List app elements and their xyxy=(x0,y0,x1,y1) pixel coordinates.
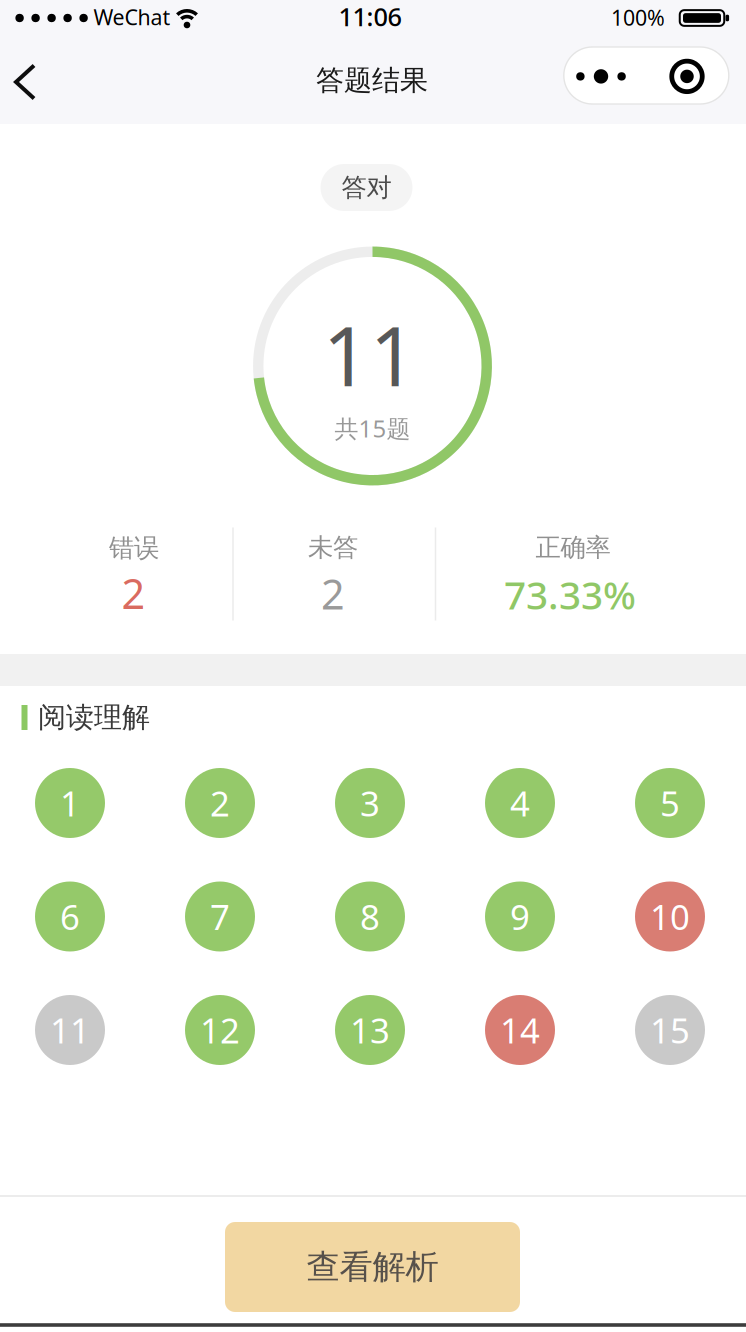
staticText: 8 xyxy=(360,893,380,939)
staticText: 阅读理解 xyxy=(38,700,150,735)
button[interactable]: 题目5 xyxy=(635,768,705,838)
staticText: 1 xyxy=(60,780,80,826)
staticText: 7 xyxy=(210,893,230,939)
staticText: 73.33% xyxy=(504,569,636,620)
staticText: 正确率 xyxy=(535,532,610,563)
button[interactable]: Back xyxy=(4,53,46,110)
button[interactable]: 题目3 xyxy=(335,768,405,838)
staticText: 2 xyxy=(210,780,230,826)
staticText: WeChat xyxy=(93,3,170,31)
button[interactable]: 题目7 xyxy=(185,881,255,951)
button[interactable]: 题目1 xyxy=(35,768,105,838)
staticText: 4 xyxy=(510,780,530,826)
button[interactable]: 查看解析 xyxy=(225,1222,520,1312)
staticText: 11 xyxy=(50,1007,90,1053)
staticText: 答对 xyxy=(341,172,391,203)
button[interactable]: More xyxy=(560,48,642,105)
staticText: 12 xyxy=(200,1007,240,1053)
button[interactable]: 题目9 xyxy=(485,881,555,951)
button[interactable]: 题目12 xyxy=(185,995,255,1065)
button[interactable]: Close xyxy=(646,48,728,105)
staticText: 10 xyxy=(650,893,690,939)
staticText: 错误 xyxy=(109,532,159,563)
staticText: 3 xyxy=(360,780,380,826)
staticText: 11:06 xyxy=(338,0,401,33)
button[interactable]: 题目14 xyxy=(485,995,555,1065)
button[interactable]: 题目13 xyxy=(335,995,405,1065)
button[interactable]: 题目6 xyxy=(35,881,105,951)
staticText: 查看解析 xyxy=(306,1246,438,1287)
staticText: 共15题 xyxy=(334,412,410,444)
staticText: 答题结果 xyxy=(316,63,428,98)
staticText: 15 xyxy=(650,1007,690,1053)
staticText: 11 xyxy=(323,301,417,409)
button[interactable]: 题目15 xyxy=(635,995,705,1065)
staticText: 9 xyxy=(510,893,530,939)
staticText: 2 xyxy=(321,566,345,621)
button[interactable]: 题目8 xyxy=(335,881,405,951)
staticText: 14 xyxy=(500,1007,540,1053)
staticText: 未答 xyxy=(308,532,358,563)
staticText: 13 xyxy=(350,1007,390,1053)
staticText: 2 xyxy=(121,566,145,620)
staticText: 100% xyxy=(611,3,665,32)
button[interactable]: 题目4 xyxy=(485,768,555,838)
button[interactable]: 题目2 xyxy=(185,768,255,838)
staticText: 6 xyxy=(60,893,80,939)
staticText: 5 xyxy=(660,780,680,826)
button[interactable]: 题目11 xyxy=(35,995,105,1065)
button[interactable]: 题目10 xyxy=(635,881,705,951)
